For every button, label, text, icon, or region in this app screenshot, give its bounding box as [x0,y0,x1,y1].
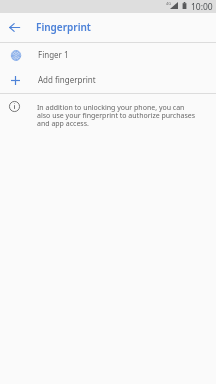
staticText: Finger 1 [38,49,69,60]
staticText: 10:00 [191,1,213,12]
button[interactable]: Back [0,13,29,42]
staticText: 4G [166,1,172,6]
staticText: Add fingerprint [38,74,96,85]
button[interactable]: Add fingerprint [0,68,216,93]
staticText: Fingerprint [36,20,91,34]
button[interactable]: Finger 1 [0,43,216,68]
staticText: In addition to unlocking your phone, you… [37,103,199,128]
